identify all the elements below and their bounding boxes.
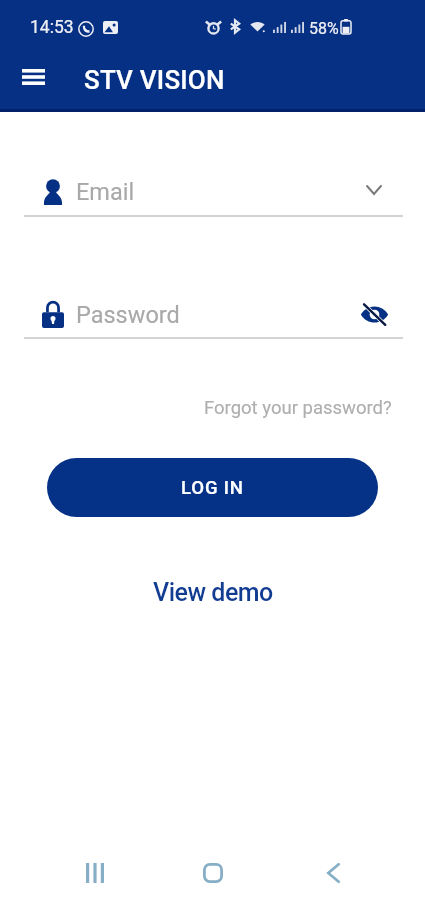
button[interactable]: Forgot your password? xyxy=(204,397,392,419)
button[interactable]: Home xyxy=(189,849,237,897)
staticText: 14:53 xyxy=(30,17,74,38)
button[interactable]: LOG IN xyxy=(47,458,378,517)
button[interactable]: Password xyxy=(24,293,344,339)
staticText: STV VISION xyxy=(84,65,225,95)
staticText: Forgot your password? xyxy=(204,397,392,419)
staticText: View demo xyxy=(153,578,273,607)
button[interactable]: Expand email options xyxy=(356,172,392,208)
button[interactable]: View demo xyxy=(147,576,279,609)
button[interactable]: Email xyxy=(24,170,344,217)
staticText: Password xyxy=(76,301,180,329)
staticText: Email xyxy=(76,178,135,206)
button[interactable]: Recent apps xyxy=(71,849,119,897)
button[interactable]: Menu xyxy=(12,56,54,98)
staticText: LOG IN xyxy=(181,477,244,499)
button[interactable]: Show password xyxy=(356,296,392,332)
staticText: 58% xyxy=(309,19,339,38)
button[interactable]: Back xyxy=(309,849,357,897)
